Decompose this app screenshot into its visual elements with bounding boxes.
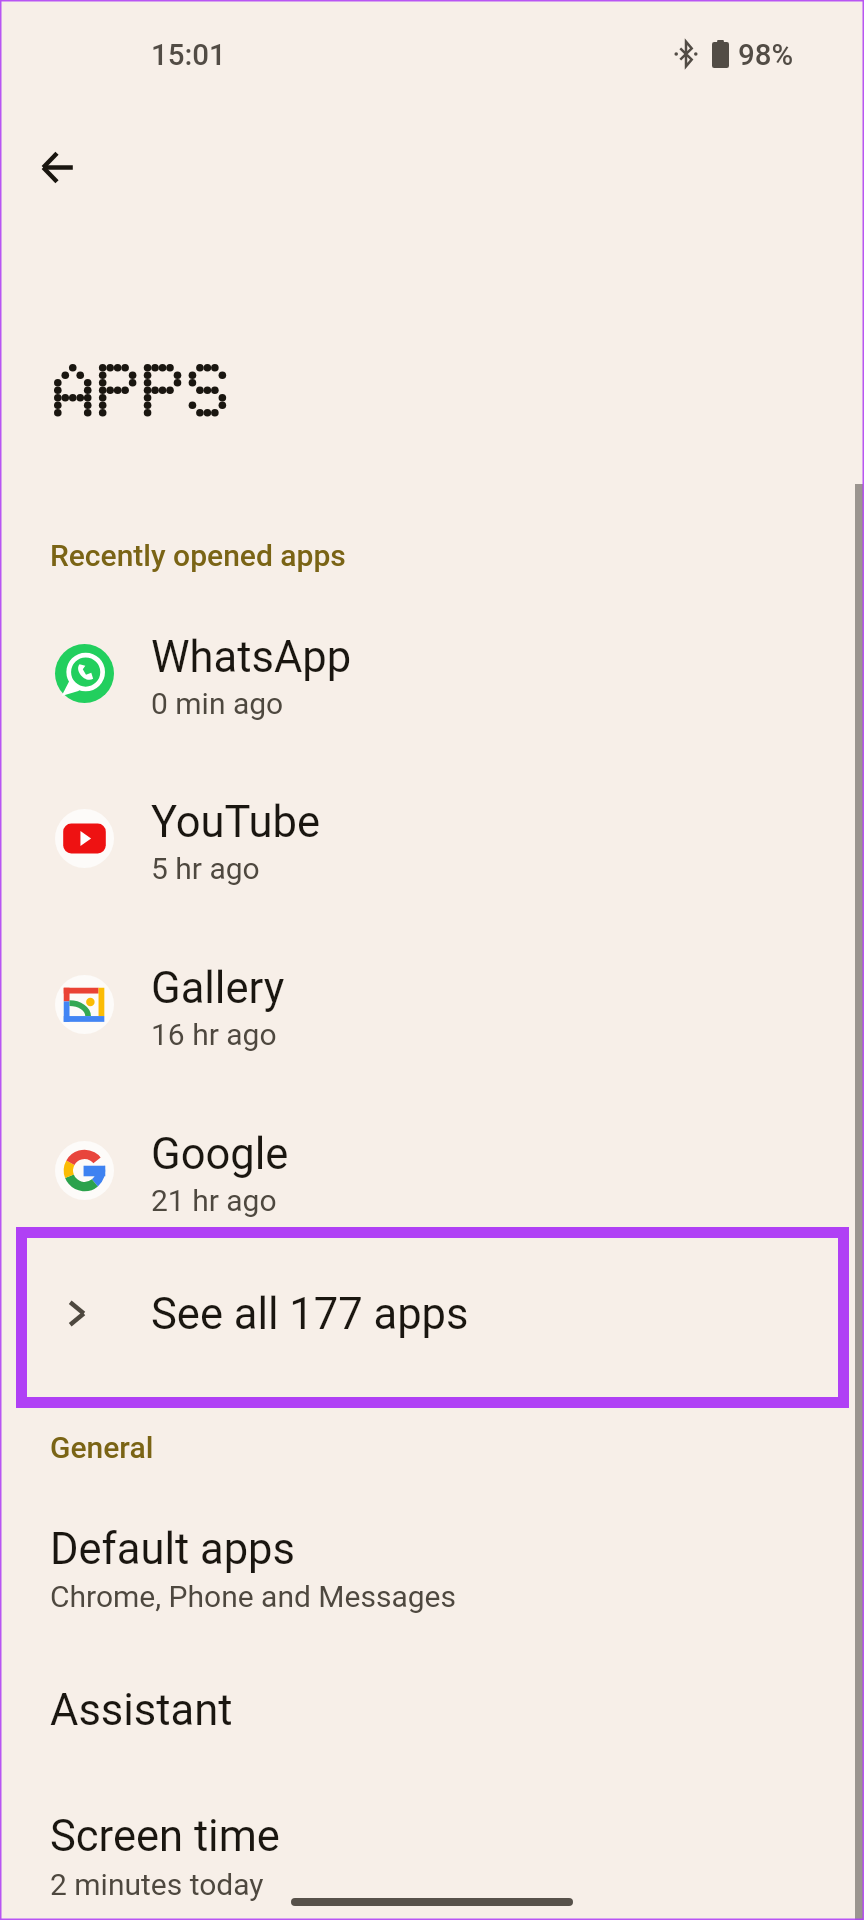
staticText: 0 min ago — [151, 686, 284, 721]
staticText: See all 177 apps — [151, 1289, 469, 1340]
staticText: Chrome, Phone and Messages — [50, 1579, 456, 1614]
button[interactable]: Google — [0, 1088, 864, 1253]
staticText: WhatsApp — [151, 632, 352, 683]
button[interactable]: Gallery — [0, 922, 864, 1087]
staticText: Recently opened apps — [50, 538, 346, 573]
staticText: General — [50, 1430, 154, 1465]
button[interactable]: See all 177 apps — [16, 1227, 848, 1408]
staticText: Gallery — [151, 963, 285, 1014]
button[interactable]: Default apps — [0, 1516, 864, 1612]
staticText: YouTube — [151, 797, 320, 848]
button[interactable]: Screen time — [0, 1803, 864, 1899]
staticText: 21 hr ago — [151, 1183, 277, 1218]
staticText: Screen time — [50, 1811, 280, 1862]
staticText: 98% — [738, 38, 794, 73]
staticText: Google — [151, 1129, 289, 1180]
staticText: 16 hr ago — [151, 1017, 277, 1052]
staticText: 5 hr ago — [151, 851, 260, 886]
staticText: Assistant — [50, 1685, 233, 1736]
staticText: 15:01 — [151, 38, 226, 73]
button[interactable]: Assistant — [0, 1677, 864, 1773]
button[interactable]: YouTube — [0, 756, 864, 921]
button[interactable]: WhatsApp — [0, 591, 864, 756]
staticText: 2 minutes today — [50, 1867, 264, 1902]
staticText: Default apps — [50, 1524, 295, 1575]
button[interactable]: Back — [22, 131, 94, 203]
